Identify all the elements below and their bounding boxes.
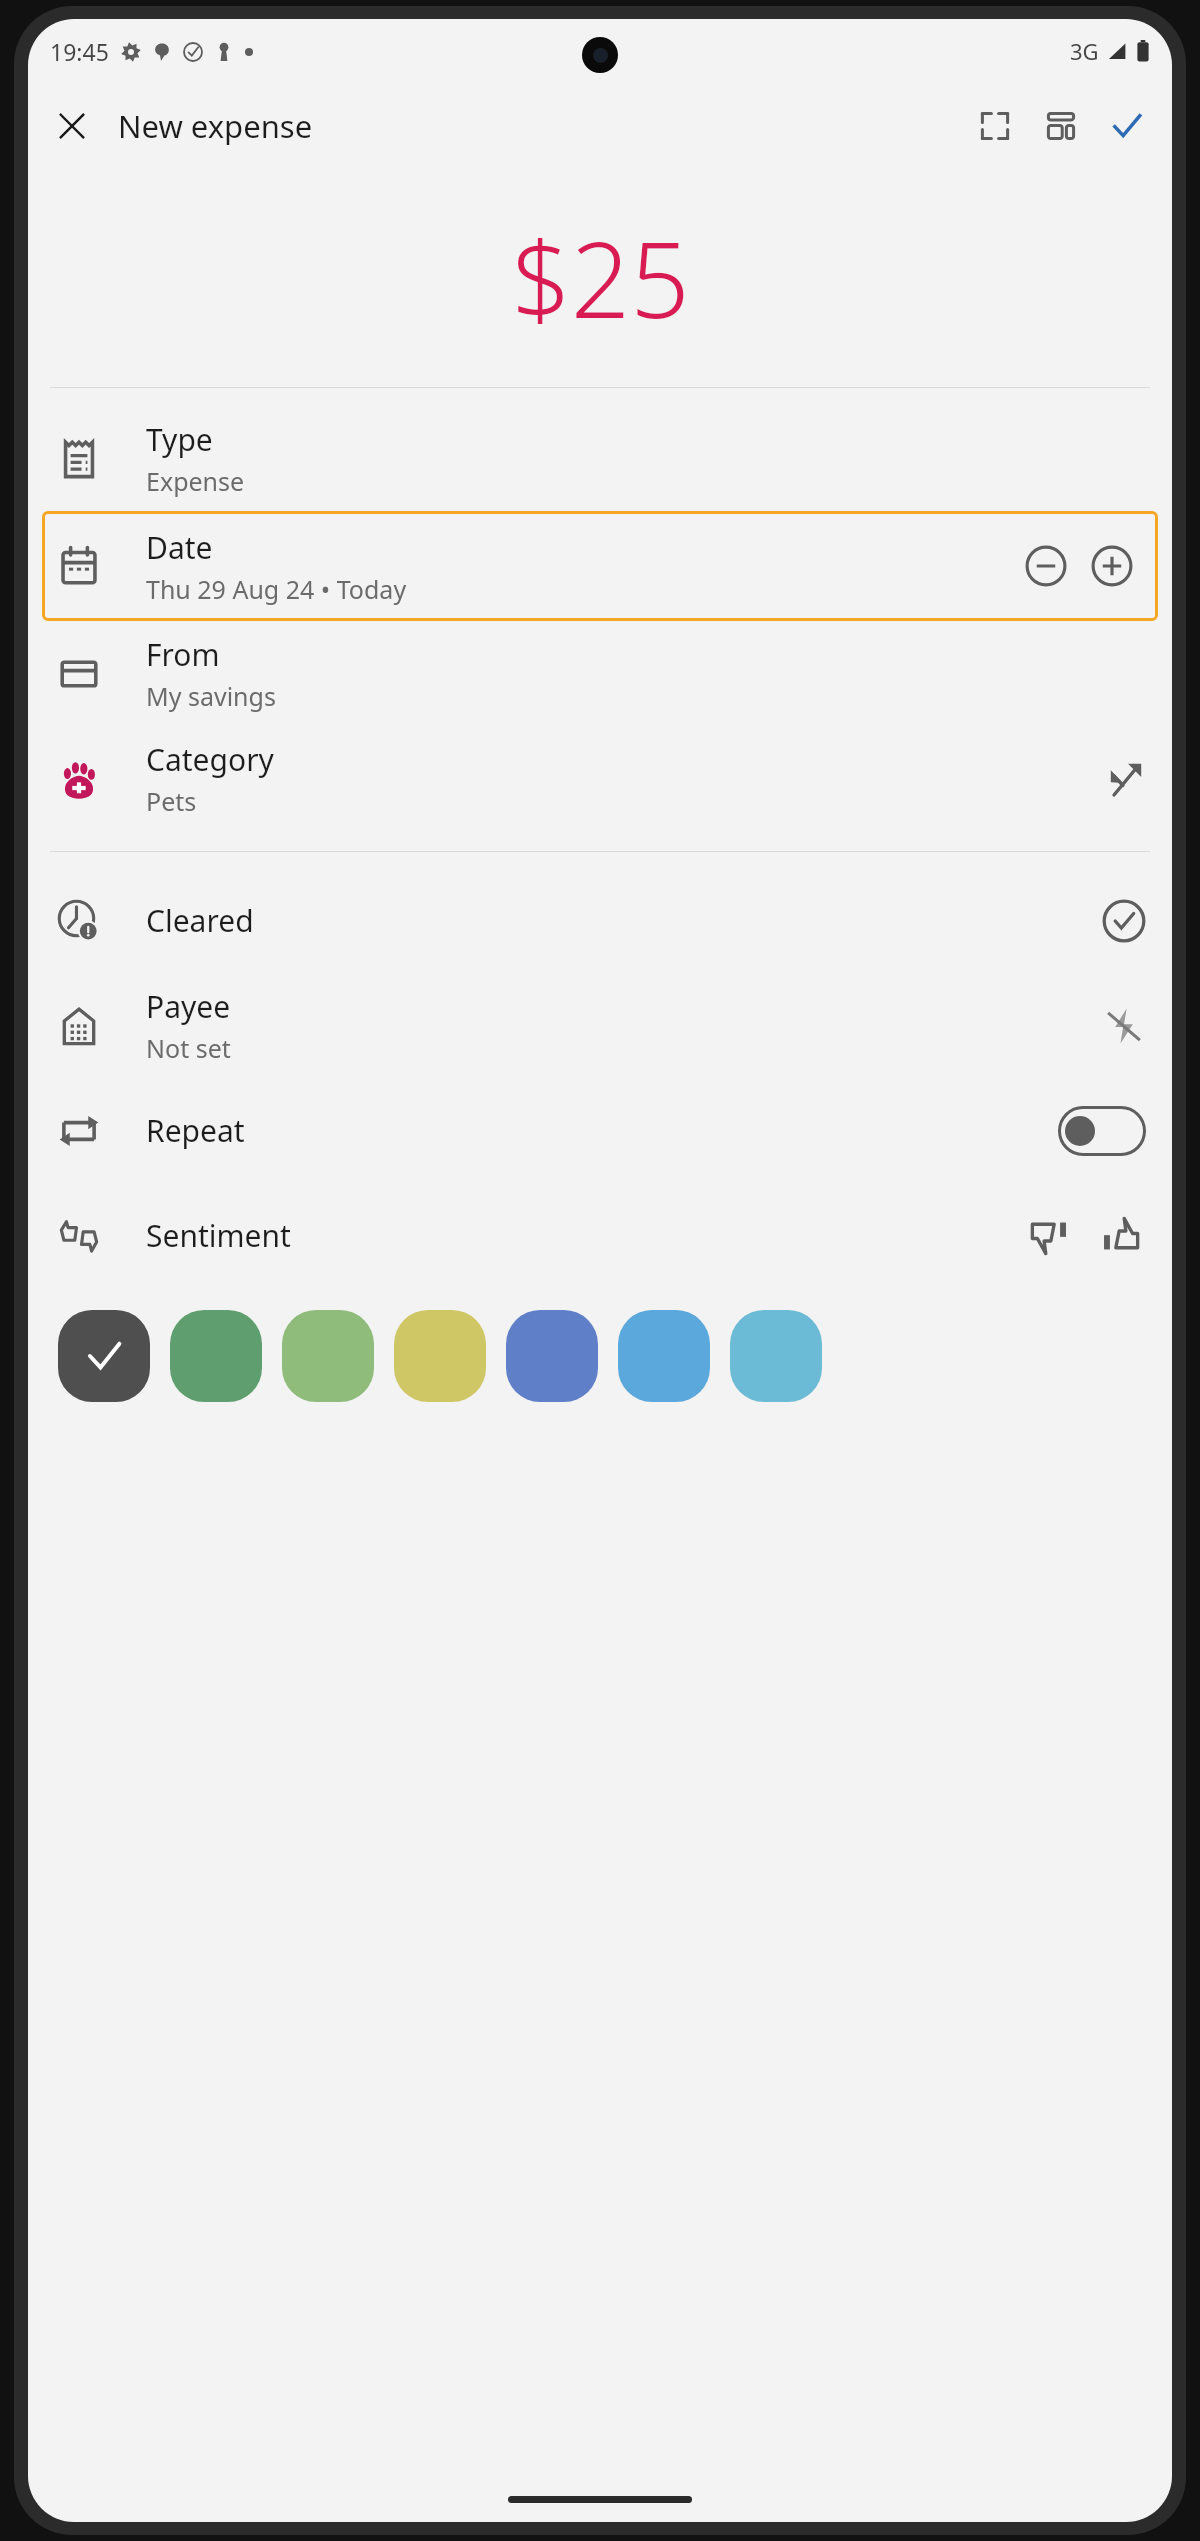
button[interactable]: Next day: [1084, 538, 1140, 594]
button[interactable]: Repeat: [28, 1078, 1172, 1183]
button[interactable]: Layout: [1032, 97, 1090, 155]
staticText: New expense: [118, 105, 313, 147]
staticText: Sentiment: [146, 1215, 291, 1256]
staticText: Category: [146, 739, 274, 780]
button[interactable]: Colour 5: [506, 1310, 598, 1402]
button[interactable]: Colour 3: [282, 1310, 374, 1402]
staticText: Thu 29 Aug 24 • Today: [146, 572, 407, 606]
button[interactable]: Split: [1106, 759, 1146, 799]
button[interactable]: Colour 2: [170, 1310, 262, 1402]
button[interactable]: Scan: [966, 97, 1024, 155]
button[interactable]: From: [28, 621, 1172, 726]
button[interactable]: Save: [1098, 97, 1156, 155]
staticText: Not set: [146, 1031, 231, 1065]
button[interactable]: Colour 7: [730, 1310, 822, 1402]
button[interactable]: Thumbs up: [1094, 1210, 1146, 1262]
staticText: 19:45: [50, 36, 109, 67]
button[interactable]: Colour 1: [58, 1310, 150, 1402]
button[interactable]: Cleared: [28, 868, 1172, 973]
button[interactable]: Colour 6: [618, 1310, 710, 1402]
staticText: From: [146, 634, 220, 675]
button[interactable]: Colour 4: [394, 1310, 486, 1402]
staticText: Cleared: [146, 900, 254, 941]
button[interactable]: Close: [44, 98, 100, 154]
staticText: Date: [146, 527, 213, 568]
staticText: Repeat: [146, 1110, 245, 1151]
staticText: Pets: [146, 784, 197, 818]
button[interactable]: Date: [42, 511, 1158, 621]
button[interactable]: Thumbs down: [1024, 1210, 1076, 1262]
staticText: Payee: [146, 986, 231, 1027]
button[interactable]: $25: [28, 169, 1172, 387]
button[interactable]: Category: [28, 726, 1172, 831]
button[interactable]: Sentiment: [28, 1183, 1172, 1288]
button[interactable]: Payee: [28, 973, 1172, 1078]
staticText: Expense: [146, 464, 245, 498]
button[interactable]: Type: [28, 406, 1172, 511]
staticText: $25: [511, 207, 690, 349]
button[interactable]: Repeat toggle: [1058, 1106, 1146, 1156]
staticText: My savings: [146, 679, 276, 713]
button[interactable]: Cleared: [1102, 899, 1146, 943]
staticText: 3G: [1070, 36, 1099, 66]
button[interactable]: Flash off: [1102, 1004, 1146, 1048]
button[interactable]: Previous day: [1018, 538, 1074, 594]
staticText: Type: [146, 419, 213, 460]
